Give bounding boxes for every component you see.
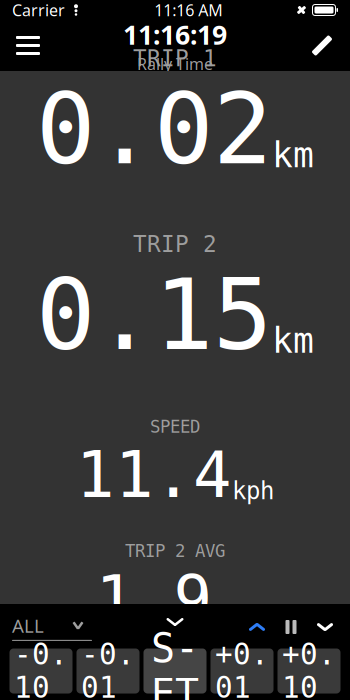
staticText: TRIP 1 [133, 45, 217, 71]
staticText: km [272, 135, 314, 175]
staticText: 0.15 [36, 259, 272, 371]
button[interactable]: Increase [240, 612, 274, 642]
staticText: -0.10 [14, 638, 68, 700]
staticText: kph [232, 477, 274, 504]
staticText: SPEED [150, 417, 200, 437]
staticText: 1.9 [95, 563, 212, 635]
staticText: Rally Time [137, 53, 213, 74]
button[interactable]: Menu [4, 21, 52, 69]
staticText: kph [212, 602, 254, 629]
button[interactable]: Pause [274, 612, 308, 642]
button[interactable]: Decrease [308, 612, 342, 642]
button[interactable]: Edit [298, 21, 346, 69]
staticText: +0.10 [282, 638, 336, 700]
button[interactable]: -0.01 [76, 648, 139, 693]
staticText: TRIP 2 AVG [125, 541, 225, 561]
staticText: SET [151, 626, 199, 700]
staticText: ALL [12, 613, 44, 638]
button[interactable]: +0.01 [210, 648, 273, 693]
staticText: 11.4 [76, 439, 232, 511]
staticText: 11:16 AM [154, 0, 223, 21]
staticText: 0.02 [36, 73, 272, 185]
button[interactable]: -0.10 [9, 648, 72, 693]
button[interactable]: ALL [12, 613, 92, 641]
staticText: +0.01 [215, 638, 269, 700]
staticText: TRIP 2 [133, 231, 217, 257]
staticText: -0.01 [81, 638, 135, 700]
button[interactable]: SET [143, 648, 206, 693]
staticText: 11:16:19 [123, 17, 227, 52]
button[interactable]: +0.10 [277, 648, 340, 693]
button[interactable]: Collapse [155, 607, 195, 637]
staticText: Carrier [12, 0, 65, 21]
staticText: km [272, 321, 314, 360]
